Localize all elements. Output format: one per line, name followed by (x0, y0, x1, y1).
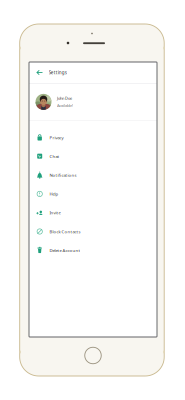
button[interactable]: Chat (29, 147, 157, 166)
staticText: Available! (57, 103, 73, 108)
staticText: Chat (49, 153, 59, 159)
staticText: Invite (49, 210, 60, 216)
button[interactable]: John Doe (29, 84, 157, 120)
staticText: Settings (49, 69, 67, 76)
button[interactable]: Help (29, 184, 157, 203)
button[interactable]: Settings (29, 62, 157, 83)
staticText: Block Contacts (49, 229, 80, 234)
button[interactable]: Invite (29, 203, 157, 222)
staticText: Privacy (49, 135, 63, 140)
staticText: Notifications (49, 172, 76, 178)
button[interactable]: Privacy (29, 128, 157, 147)
button[interactable]: Notifications (29, 166, 157, 184)
button[interactable]: Delete Account (29, 241, 157, 260)
staticText: John Doe (57, 96, 72, 101)
button[interactable]: Block Contacts (29, 222, 157, 241)
staticText: Help (49, 191, 58, 197)
staticText: Delete Account (49, 247, 80, 253)
